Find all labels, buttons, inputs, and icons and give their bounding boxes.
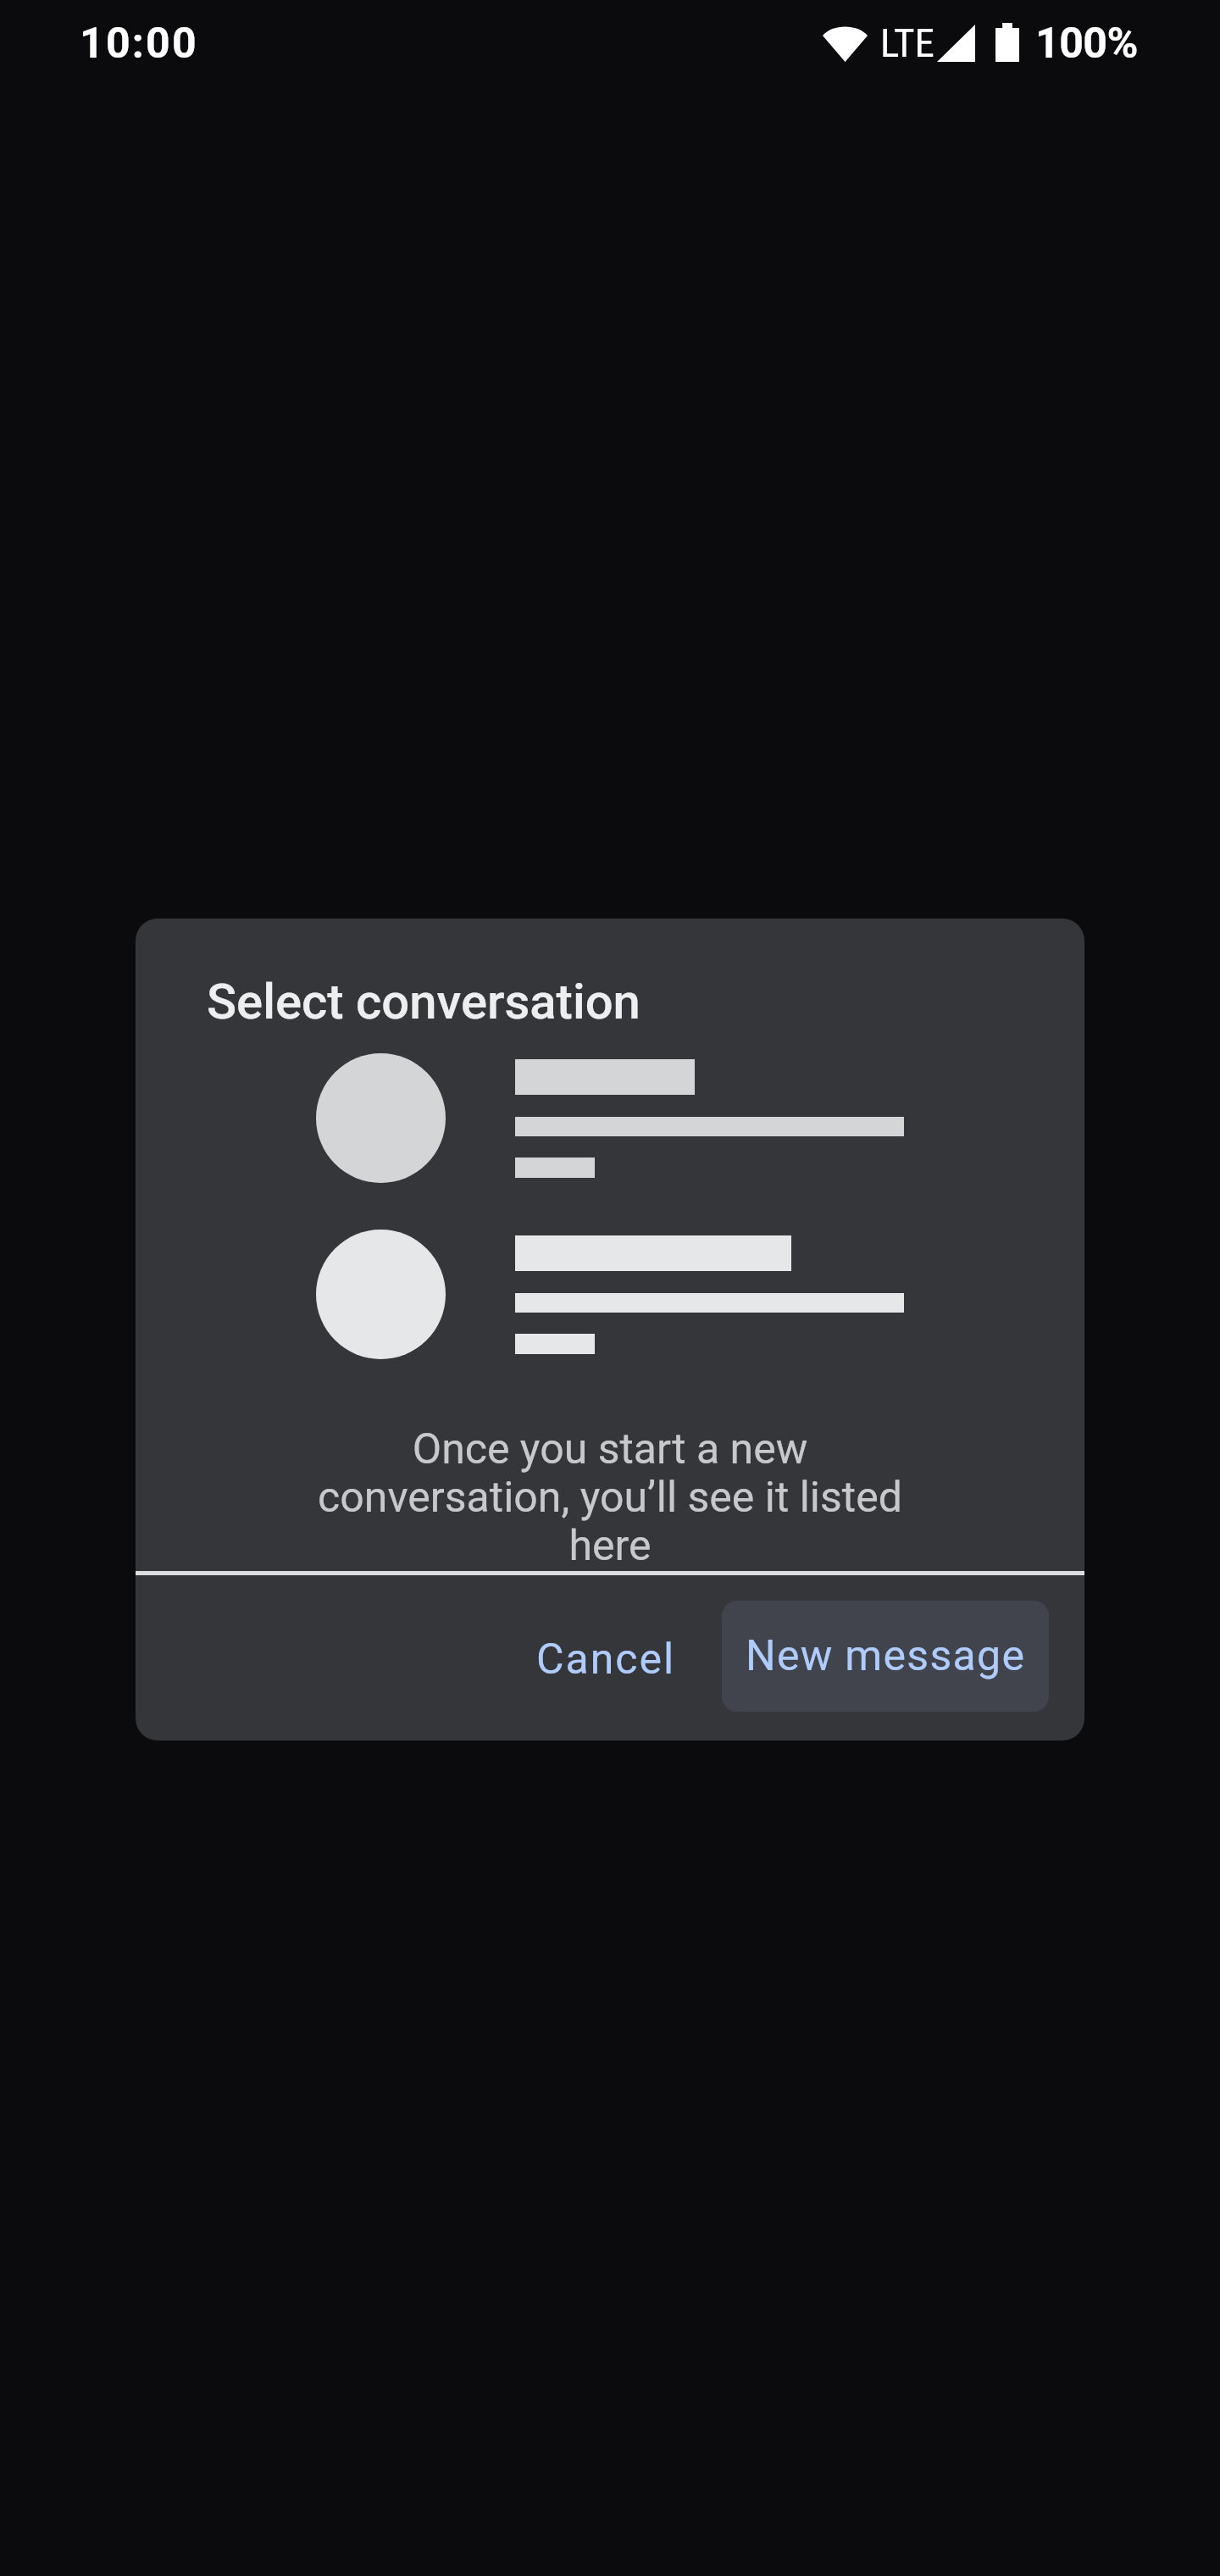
staticText: 100%	[1035, 19, 1139, 69]
button[interactable]: Conversation	[280, 1035, 957, 1202]
staticText: Cancel	[536, 1635, 676, 1685]
staticText: 10:00	[80, 19, 198, 69]
staticText: Once you start a new conversation, you’l…	[301, 1424, 919, 1570]
other: Battery full	[995, 23, 1019, 62]
other: Wi-Fi	[823, 24, 868, 62]
button[interactable]: Cancel	[508, 1604, 703, 1715]
staticText: Select conversation	[207, 973, 640, 1030]
button[interactable]: New message	[722, 1601, 1049, 1712]
staticText: LTE	[880, 19, 934, 66]
button[interactable]: Conversation	[280, 1211, 957, 1378]
other: Mobile signal	[937, 25, 975, 62]
staticText: New message	[746, 1631, 1026, 1681]
